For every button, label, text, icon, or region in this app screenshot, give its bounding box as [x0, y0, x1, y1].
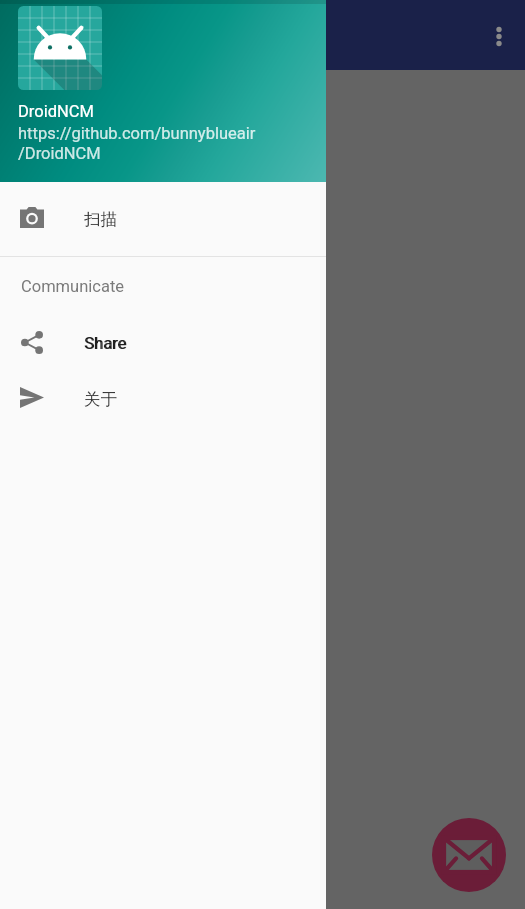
staticText: Share: [85, 334, 128, 353]
button[interactable]: 扫描: [0, 182, 326, 256]
button[interactable]: Share: [0, 315, 326, 371]
staticText: DroidNCM: [18, 102, 94, 121]
button[interactable]: 关于: [0, 371, 326, 427]
staticText: https://github.com/bunnyblueair /DroidNC…: [18, 124, 268, 163]
staticText: 扫描: [84, 209, 117, 230]
staticText: Share: [84, 334, 127, 353]
staticText: Communicate: [21, 277, 125, 296]
staticText: 关于: [84, 389, 117, 410]
button[interactable]: Compose message: [432, 818, 506, 892]
button[interactable]: More options: [475, 11, 523, 59]
